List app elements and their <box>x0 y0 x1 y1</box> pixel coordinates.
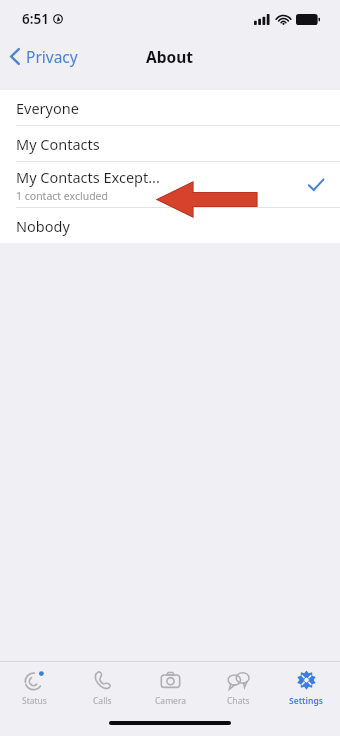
button[interactable]: My Contacts <box>0 126 340 161</box>
staticText: About <box>146 46 194 67</box>
staticText: My Contacts <box>16 134 100 154</box>
button[interactable]: Everyone <box>0 90 340 125</box>
staticText: Camera <box>155 695 186 707</box>
staticText: Status <box>22 695 47 707</box>
button[interactable]: Nobody <box>0 208 340 243</box>
staticText: Privacy <box>26 46 78 67</box>
staticText: Settings <box>289 695 323 707</box>
staticText: Chats <box>227 695 250 707</box>
staticText: Calls <box>93 695 112 707</box>
button[interactable]: Settings <box>272 665 340 711</box>
button[interactable]: Privacy <box>0 42 88 71</box>
staticText: Nobody <box>16 216 70 236</box>
staticText: 1 contact excluded <box>16 189 108 203</box>
staticText: My Contacts Except... <box>16 167 160 187</box>
other: Selected <box>308 178 324 192</box>
staticText: Everyone <box>16 98 79 118</box>
button[interactable]: Camera <box>136 665 204 711</box>
staticText: 6:51 <box>22 10 49 28</box>
button[interactable]: Calls <box>68 665 136 711</box>
button[interactable]: Chats <box>204 665 272 711</box>
button[interactable]: Status <box>0 665 68 711</box>
button[interactable]: My Contacts Except... <box>0 162 340 207</box>
